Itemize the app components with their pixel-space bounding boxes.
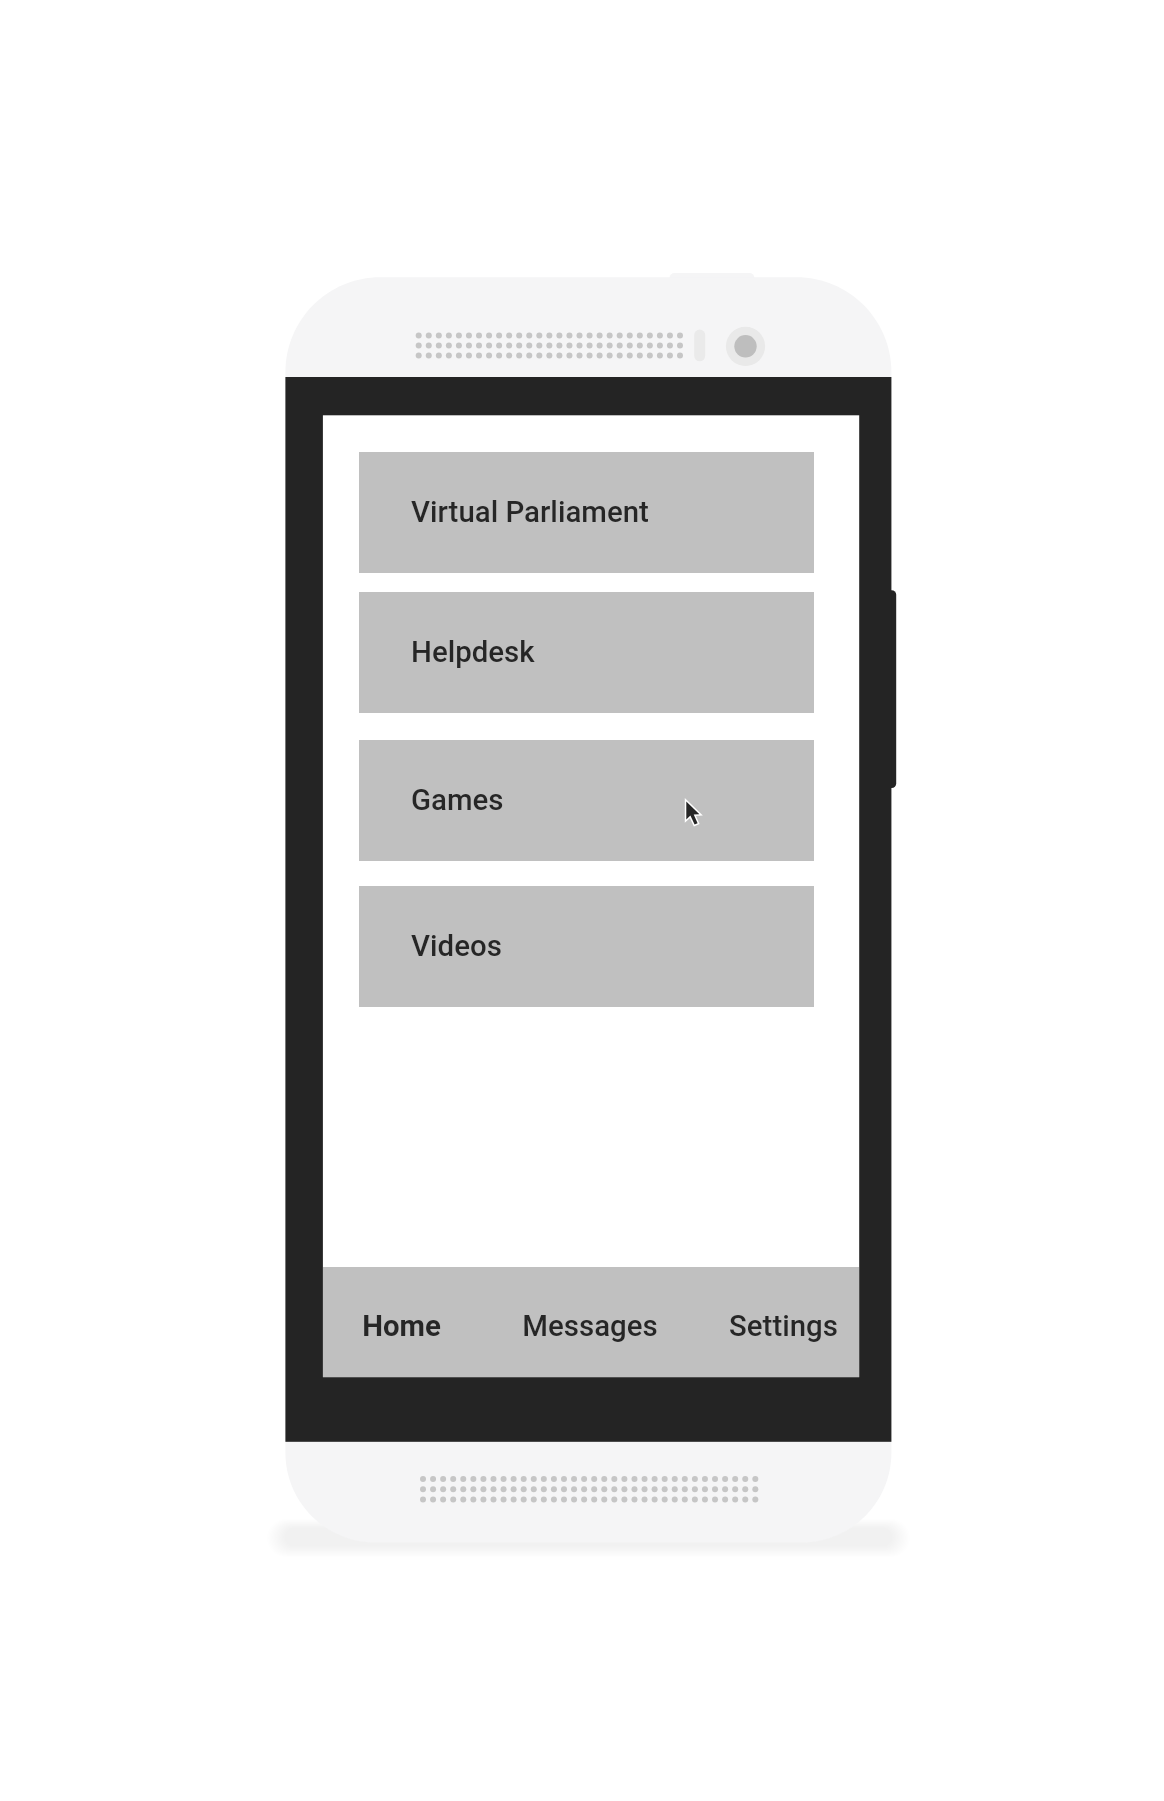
staticText: Messages bbox=[522, 1309, 658, 1343]
staticText: Home bbox=[362, 1309, 441, 1343]
button[interactable]: Games bbox=[359, 740, 814, 861]
staticText: Virtual Parliament bbox=[411, 495, 649, 529]
button[interactable]: Messages bbox=[493, 1267, 686, 1377]
button[interactable]: Virtual Parliament bbox=[359, 452, 814, 573]
staticText: Settings bbox=[729, 1309, 838, 1343]
staticText: Games bbox=[411, 783, 504, 817]
button[interactable]: Home bbox=[330, 1267, 472, 1377]
button[interactable]: Helpdesk bbox=[359, 592, 814, 713]
staticText: Helpdesk bbox=[411, 635, 535, 669]
button[interactable]: Settings bbox=[700, 1267, 866, 1377]
staticText: Videos bbox=[411, 929, 502, 963]
button[interactable]: Videos bbox=[359, 886, 814, 1007]
